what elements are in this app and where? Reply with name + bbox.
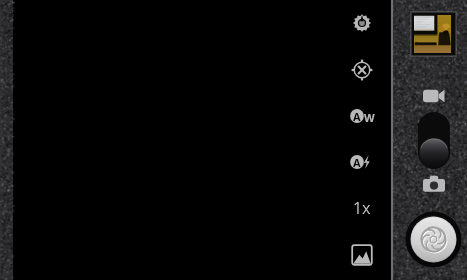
- button[interactable]: 1x: [344, 190, 380, 226]
- button[interactable]: Switch camera mode: [418, 112, 450, 169]
- button[interactable]: Video mode: [418, 86, 450, 106]
- button[interactable]: Auto white balance: [344, 98, 380, 134]
- button[interactable]: Gallery: [344, 237, 380, 273]
- staticText: A: [353, 109, 361, 124]
- staticText: W: [364, 110, 375, 125]
- staticText: A: [353, 155, 361, 170]
- button[interactable]: Settings: [344, 5, 380, 41]
- button[interactable]: Auto flash: [344, 144, 380, 180]
- button[interactable]: Shutter: [405, 211, 462, 268]
- button[interactable]: Geotag off: [344, 52, 380, 88]
- button[interactable]: Photo mode: [418, 174, 450, 194]
- button[interactable]: Last photo: [411, 12, 456, 56]
- staticText: 1x: [353, 197, 371, 219]
